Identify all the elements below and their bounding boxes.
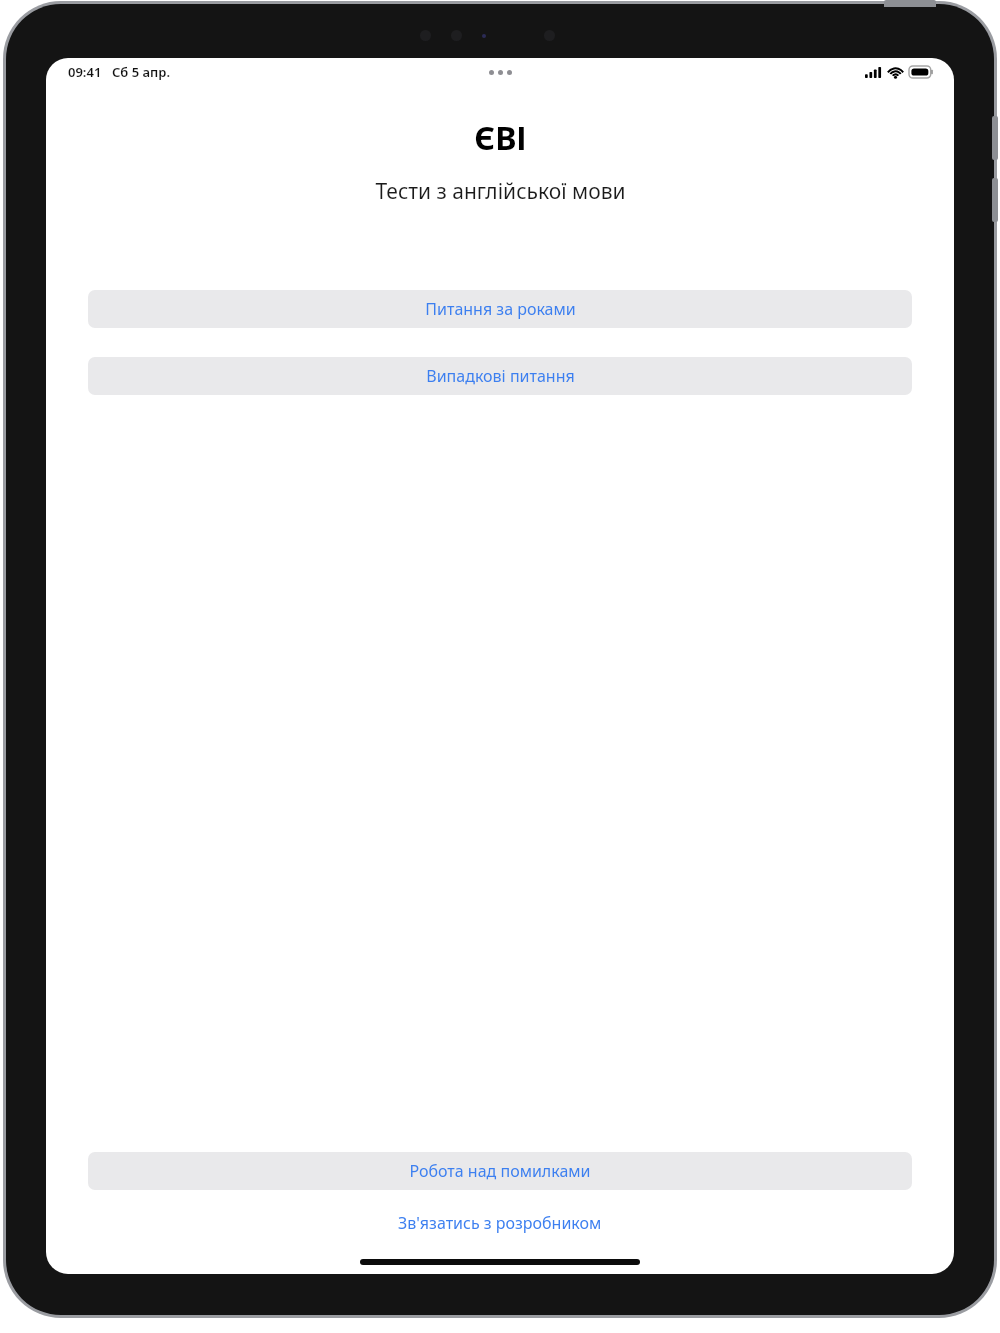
staticText: Зв'язатись з розробником	[398, 1212, 602, 1234]
button[interactable]: Зв'язатись з розробником	[386, 1206, 614, 1240]
staticText: 09:41	[68, 63, 102, 81]
staticText: ЄВІ	[474, 116, 527, 160]
staticText: Сб 5 апр.	[112, 63, 171, 81]
button[interactable]: Робота над помилками	[88, 1152, 912, 1190]
staticText: Випадкові питання	[426, 365, 575, 387]
button[interactable]: Випадкові питання	[88, 357, 912, 395]
staticText: Тести з англійської мови	[375, 177, 626, 206]
button[interactable]: Питання за роками	[88, 290, 912, 328]
staticText: Робота над помилками	[409, 1160, 591, 1182]
staticText: Питання за роками	[425, 298, 576, 320]
